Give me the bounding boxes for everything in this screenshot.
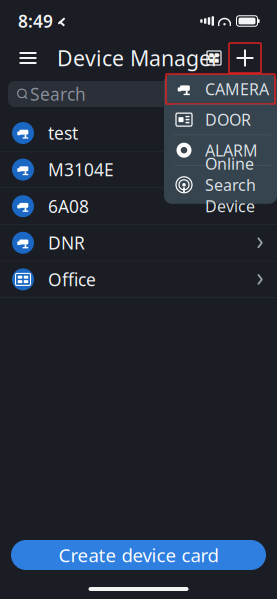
staticText: Device Manager xyxy=(57,44,220,72)
staticText: DOOR xyxy=(205,109,251,130)
staticText: 8:49 xyxy=(18,9,53,32)
button[interactable]: DOOR xyxy=(164,105,277,135)
button[interactable]: M3104E xyxy=(0,152,277,188)
staticText: M3104E xyxy=(48,158,114,181)
button[interactable]: Menu xyxy=(8,38,48,78)
staticText: 6A08 xyxy=(48,195,89,218)
staticText: Search xyxy=(30,82,86,105)
staticText: Online Search xyxy=(205,153,256,195)
staticText: Create device card xyxy=(58,543,218,567)
button[interactable]: Online Search xyxy=(164,166,277,204)
button[interactable]: Add device xyxy=(229,43,261,73)
staticText: ALARM xyxy=(205,140,258,161)
button[interactable]: Office xyxy=(0,261,277,298)
button[interactable]: Scan QR code xyxy=(199,41,229,75)
button[interactable]: test xyxy=(0,115,277,152)
staticText: DNR xyxy=(48,231,85,254)
staticText: CAMERA xyxy=(205,78,269,100)
button[interactable]: DNR xyxy=(0,225,277,261)
staticText: Device xyxy=(205,195,255,217)
button[interactable]: Search xyxy=(8,81,269,107)
staticText: Office xyxy=(48,268,96,291)
staticText: test xyxy=(48,121,78,144)
button[interactable]: 6A08 xyxy=(0,188,277,225)
button[interactable]: CAMERA xyxy=(164,74,277,105)
button[interactable]: ALARM xyxy=(164,135,277,166)
button[interactable]: Create device card xyxy=(11,540,266,570)
